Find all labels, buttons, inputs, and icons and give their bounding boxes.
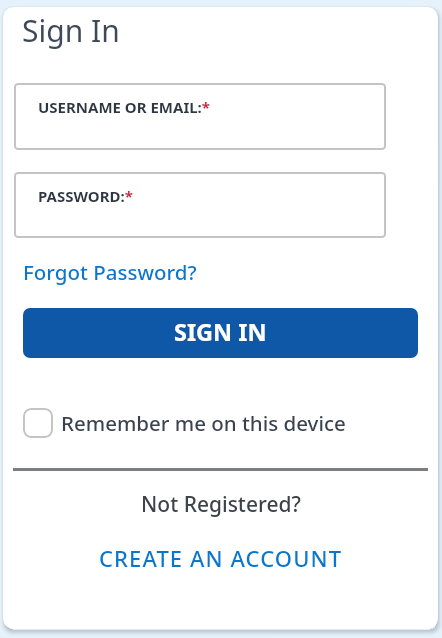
button[interactable]: Forgot Password? [22, 256, 207, 292]
staticText: Remember me on this device [61, 409, 346, 437]
staticText: CREATE AN ACCOUNT [99, 543, 351, 573]
button[interactable]: USERNAME OR EMAIL:* [14, 83, 386, 150]
staticText: SIGN IN [174, 316, 267, 348]
button[interactable]: PASSWORD:* [14, 172, 386, 238]
staticText: Sign In [22, 10, 120, 51]
staticText: USERNAME OR EMAIL:* [38, 97, 210, 117]
staticText: Forgot Password? [23, 258, 197, 286]
button[interactable]: CREATE AN ACCOUNT [96, 540, 348, 574]
button[interactable]: Remember me on this device [23, 408, 353, 438]
staticText: Not Registered? [141, 490, 301, 519]
button[interactable]: SIGN IN [23, 308, 418, 358]
staticText: PASSWORD:* [38, 186, 133, 206]
